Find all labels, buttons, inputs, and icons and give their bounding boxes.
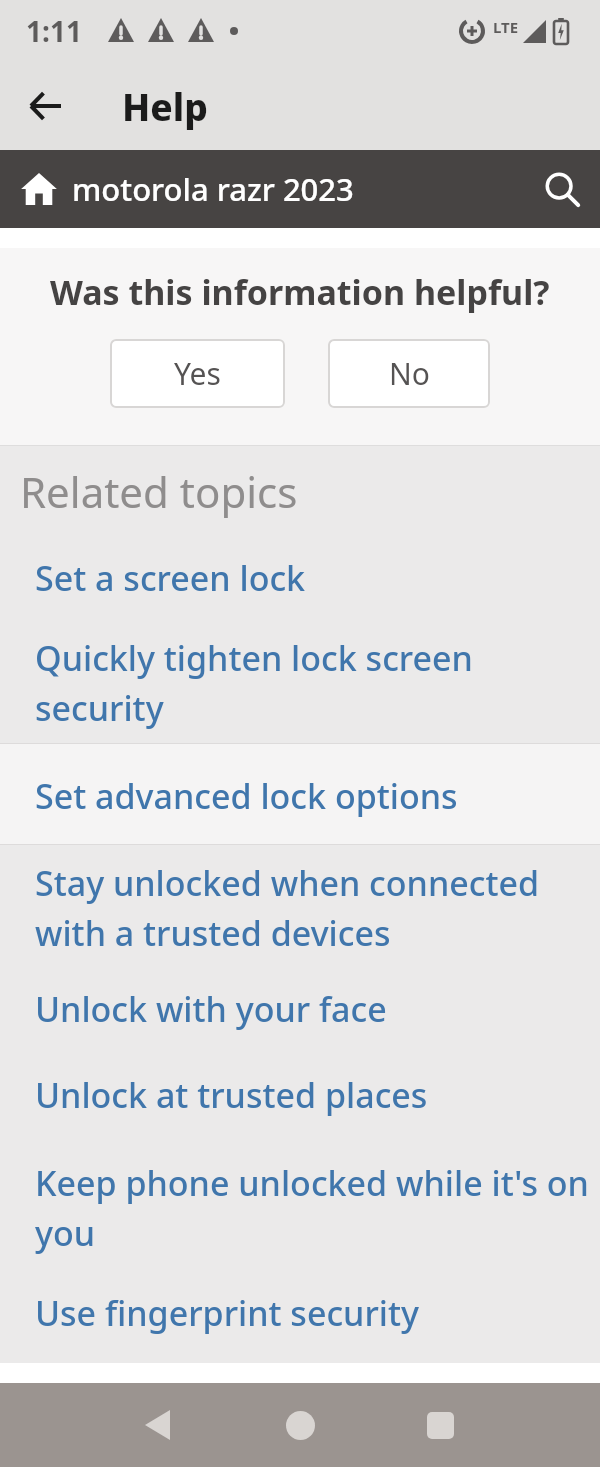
button[interactable]: Set advanced lock options — [0, 743, 600, 845]
staticText: Help — [122, 81, 208, 131]
button[interactable]: Yes — [110, 339, 285, 408]
staticText: Unlock with your face — [35, 986, 387, 1032]
staticText: 1:11 — [26, 12, 82, 50]
button[interactable] — [412, 1397, 468, 1453]
staticText: motorola razr 2023 — [72, 168, 354, 210]
button[interactable]: Keep phone unlocked while it's on you — [0, 1160, 600, 1256]
button[interactable]: Stay unlocked when connected with a trus… — [0, 860, 600, 956]
staticText: Use fingerprint security — [35, 1290, 419, 1336]
button[interactable]: Unlock with your face — [0, 986, 600, 1032]
staticText: LTE — [493, 17, 519, 37]
staticText: Set a screen lock — [35, 555, 306, 601]
button[interactable] — [129, 1397, 185, 1453]
button[interactable]: No — [328, 339, 490, 408]
button[interactable]: Set a screen lock — [0, 555, 600, 601]
staticText: Quickly tighten lock screen security — [35, 635, 473, 731]
staticText: Unlock at trusted places — [35, 1072, 428, 1118]
button[interactable]: Quickly tighten lock screen security — [0, 635, 600, 731]
button[interactable]: Use fingerprint security — [0, 1290, 600, 1336]
button[interactable]: motorola razr 2023 — [20, 150, 580, 228]
button[interactable]: Unlock at trusted places — [0, 1072, 600, 1118]
staticText: Stay unlocked when connected with a trus… — [35, 860, 540, 956]
staticText: Keep phone unlocked while it's on you — [35, 1160, 589, 1256]
button[interactable] — [18, 78, 74, 134]
staticText: Related topics — [20, 463, 298, 520]
staticText: No — [389, 353, 430, 394]
button[interactable] — [272, 1397, 328, 1453]
staticText: Yes — [174, 353, 221, 394]
staticText: Set advanced lock options — [35, 773, 458, 819]
staticText: Was this information helpful? — [50, 269, 550, 315]
